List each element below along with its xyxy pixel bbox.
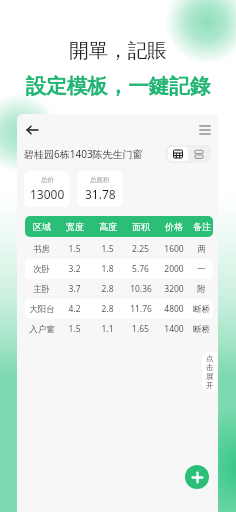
staticText: 31.78	[85, 186, 116, 202]
staticText: 断桥铝	[190, 304, 213, 315]
staticText: 总价	[41, 176, 54, 184]
staticText: 1.5	[68, 243, 81, 255]
button[interactable]: Add	[185, 465, 209, 489]
staticText: 两个…	[190, 244, 213, 255]
button[interactable]: Back	[21, 119, 43, 141]
staticText: 2.25	[132, 243, 149, 255]
staticText: 2000	[164, 263, 184, 275]
staticText: 1.8	[101, 263, 114, 275]
button[interactable]: Table view	[168, 147, 188, 161]
staticText: 2.8	[101, 283, 114, 295]
staticText: 13000	[30, 186, 65, 202]
staticText: 高度	[99, 221, 117, 232]
staticText: 5.76	[132, 263, 149, 275]
staticText: 1.5	[101, 243, 114, 255]
staticText: 11.76	[130, 303, 152, 315]
staticText: 3.2	[68, 263, 81, 275]
button[interactable]: 总价	[24, 171, 70, 207]
staticText: 入户窗	[29, 324, 55, 335]
staticText: 1400	[164, 323, 184, 335]
staticText: 3200	[164, 283, 184, 295]
staticText: 大阳台	[29, 304, 55, 315]
staticText: 价格	[165, 221, 183, 232]
staticText: 区域	[33, 221, 51, 232]
staticText: 次卧	[33, 264, 50, 275]
staticText: 2.8	[101, 303, 114, 315]
staticText: 断桥铝	[190, 324, 213, 335]
button[interactable]: 点	[202, 352, 218, 392]
staticText: 1.1	[101, 323, 114, 335]
staticText: 一个…	[190, 264, 213, 275]
staticText: 10.36	[130, 283, 152, 295]
staticText: 备注	[193, 221, 211, 232]
button[interactable]: Menu	[194, 119, 216, 141]
staticText: 碧桂园6栋1403陈先生门窗	[24, 147, 143, 161]
button[interactable]: 总面积	[77, 171, 123, 207]
button[interactable]: 入户窗	[25, 319, 213, 339]
staticText: 設定模板，一鍵記錄	[0, 73, 236, 99]
staticText: 1.5	[68, 323, 81, 335]
staticText: 1600	[164, 243, 184, 255]
staticText: 4.2	[68, 303, 81, 315]
staticText: 展	[206, 372, 214, 381]
staticText: 书房	[33, 244, 50, 255]
button[interactable]: 大阳台	[25, 299, 213, 319]
staticText: 点	[206, 354, 214, 363]
staticText: 主卧	[33, 284, 50, 295]
button[interactable]: List view	[188, 147, 209, 161]
button[interactable]: 次卧	[25, 259, 213, 279]
staticText: 開單，記賬	[0, 38, 236, 63]
button[interactable]: 书房	[25, 239, 213, 259]
button[interactable]: 主卧	[25, 279, 213, 299]
staticText: 面积	[132, 221, 150, 232]
staticText: 总面积	[90, 176, 110, 184]
staticText: 附带…	[190, 284, 213, 295]
staticText: 1.65	[132, 323, 149, 335]
staticText: 3.7	[68, 283, 81, 295]
staticText: 4800	[164, 303, 184, 315]
staticText: 击	[206, 363, 214, 372]
staticText: 开	[206, 381, 214, 390]
staticText: 宽度	[66, 221, 84, 232]
